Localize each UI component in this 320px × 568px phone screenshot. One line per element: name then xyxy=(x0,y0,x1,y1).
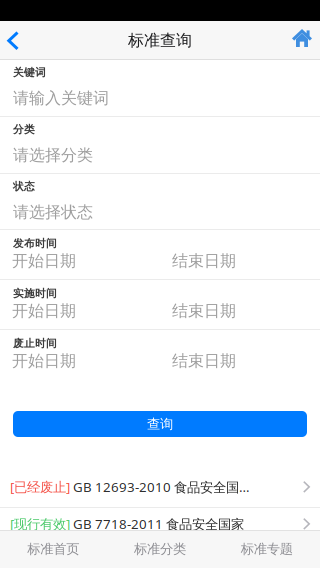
staticText: 结束日期 xyxy=(172,351,236,371)
staticText: 请选择分类 xyxy=(13,145,93,165)
staticText: 结束日期 xyxy=(172,301,236,321)
button[interactable]: Home xyxy=(292,21,320,60)
staticText: 废止时间 xyxy=(13,337,57,350)
staticText: 发布时间 xyxy=(13,237,57,250)
button[interactable]: Back xyxy=(0,21,33,60)
button[interactable]: [现行有效] xyxy=(0,508,320,544)
button[interactable]: 结束日期 xyxy=(172,250,320,272)
staticText: 标准专题 xyxy=(241,541,293,557)
staticText: 请选择状态 xyxy=(13,202,93,222)
button[interactable]: 标准专题 xyxy=(213,530,320,568)
button[interactable]: 开始日期 xyxy=(0,250,172,272)
staticText: GB 7718-2011 食品安全国家 xyxy=(70,515,244,533)
staticText: 实施时间 xyxy=(13,287,57,300)
button[interactable]: 结束日期 xyxy=(172,350,320,372)
button[interactable]: 结束日期 xyxy=(172,300,320,322)
staticText: 结束日期 xyxy=(172,251,236,271)
button[interactable]: 查询 xyxy=(13,411,307,437)
button[interactable]: 分类 xyxy=(0,117,320,173)
staticText: 状态 xyxy=(13,180,35,193)
staticText: 开始日期 xyxy=(12,251,76,271)
button[interactable]: 关键词 xyxy=(0,60,320,116)
staticText: 开始日期 xyxy=(12,301,76,321)
staticText: 请输入关键词 xyxy=(13,88,109,108)
button[interactable]: [已经废止] xyxy=(0,471,320,507)
button[interactable]: 标准首页 xyxy=(0,530,107,568)
staticText: 查询 xyxy=(147,416,173,432)
staticText: 标准查询 xyxy=(128,31,192,50)
staticText: 关键词 xyxy=(13,66,46,79)
button[interactable]: 标准分类 xyxy=(107,530,213,568)
staticText: 标准分类 xyxy=(134,541,186,557)
button[interactable]: 状态 xyxy=(0,174,320,229)
staticText: 开始日期 xyxy=(12,351,76,371)
button[interactable]: 开始日期 xyxy=(0,350,172,372)
staticText: 标准首页 xyxy=(27,541,79,557)
button[interactable]: 开始日期 xyxy=(0,300,172,322)
staticText: [现行有效] xyxy=(10,515,70,533)
staticText: GB 12693-2010 食品安全国… xyxy=(70,478,250,496)
staticText: 分类 xyxy=(13,123,35,136)
staticText: [已经废止] xyxy=(10,478,70,496)
